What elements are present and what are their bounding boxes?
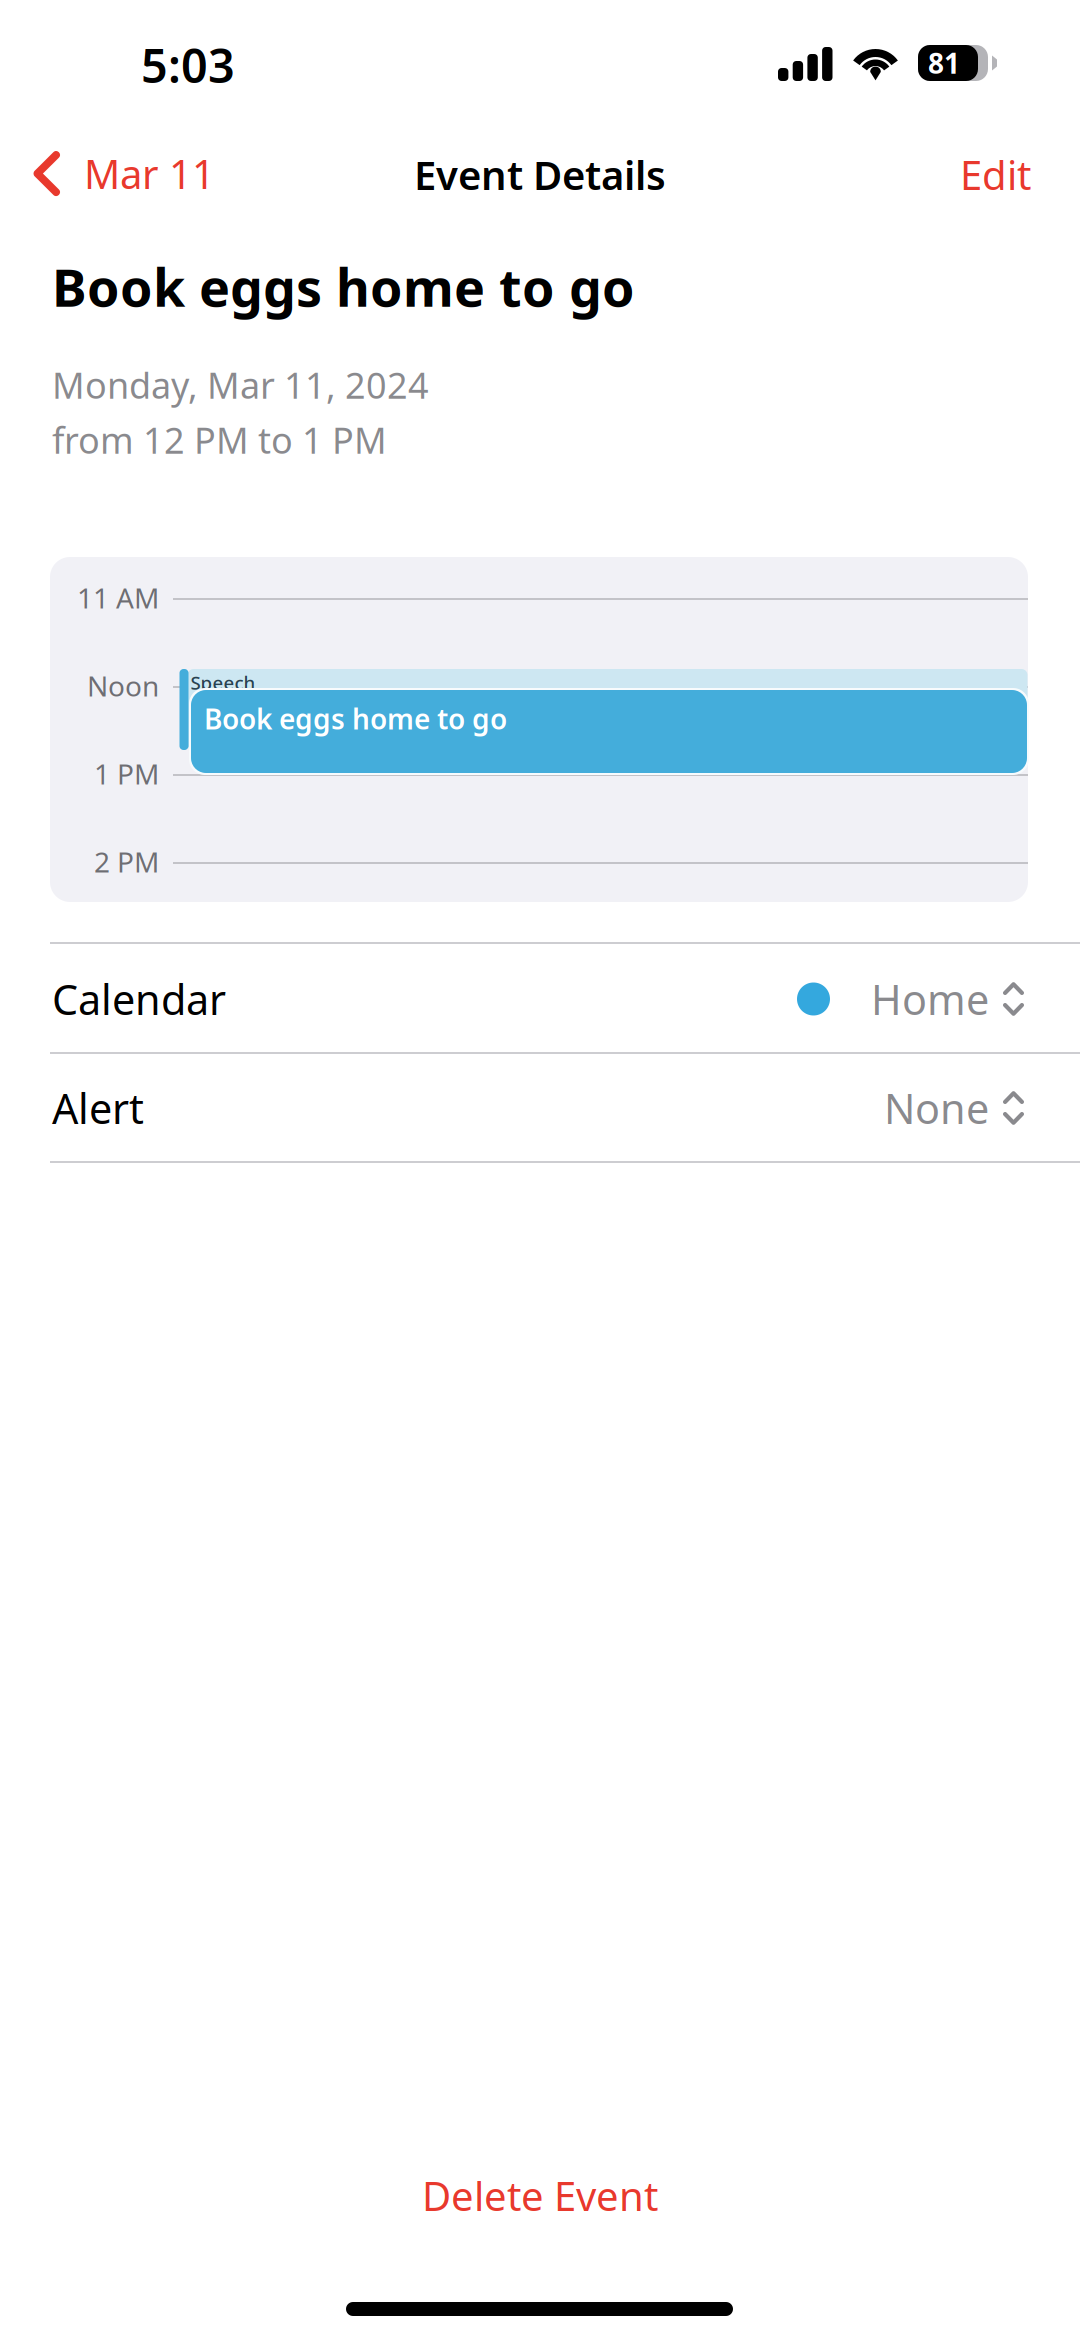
staticText: 11 AM: [77, 579, 159, 616]
staticText: Home: [871, 972, 989, 1026]
staticText: Calendar: [52, 972, 226, 1026]
staticText: Mar 11: [84, 147, 215, 200]
button[interactable]: Edit: [911, 128, 1080, 221]
staticText: None: [884, 1081, 989, 1135]
button[interactable]: Calendar: [0, 944, 1080, 1054]
staticText: Alert: [52, 1081, 144, 1135]
staticText: 5:03: [141, 34, 235, 96]
staticText: Event Details: [414, 148, 666, 201]
button[interactable]: Delete Event: [0, 2145, 1080, 2246]
staticText: from 12 PM to 1 PM: [52, 416, 387, 464]
staticText: Delete Event: [422, 2169, 658, 2222]
staticText: Edit: [960, 148, 1031, 201]
staticText: Book eggs home to go: [52, 252, 635, 321]
button[interactable]: Mar 11: [0, 129, 239, 218]
staticText: Noon: [87, 667, 159, 704]
staticText: 1 PM: [94, 755, 159, 792]
staticText: Speech: [190, 670, 255, 695]
staticText: 81: [928, 44, 960, 82]
staticText: Monday, Mar 11, 2024: [52, 361, 429, 409]
staticText: Book eggs home to go: [204, 700, 507, 737]
staticText: 2 PM: [94, 843, 159, 880]
button[interactable]: Alert: [0, 1054, 1080, 1162]
